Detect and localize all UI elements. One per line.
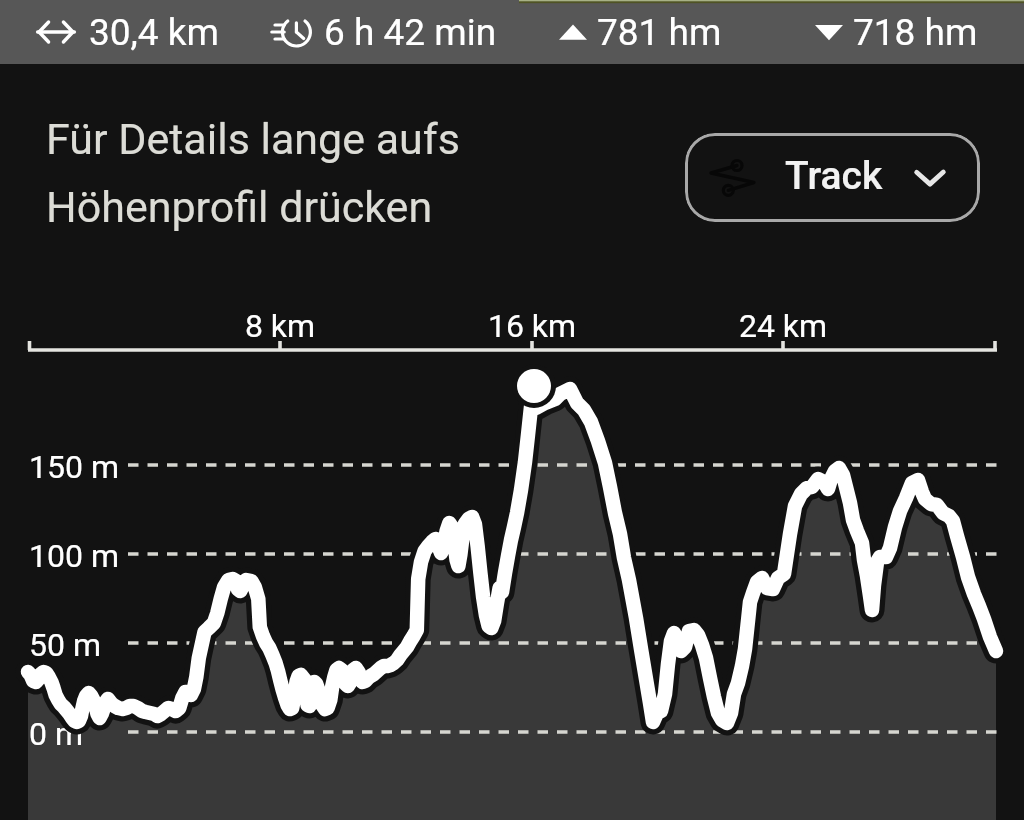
staticText: 8 km [190,307,370,345]
staticText: 100 m [29,537,119,575]
staticText: 0 m [29,715,83,753]
button[interactable]: 30,4 km [0,0,256,64]
staticText: 50 m [29,626,101,664]
staticText: 150 m [29,448,119,486]
staticText: 24 km [693,307,873,345]
staticText: 16 km [442,307,622,345]
button[interactable]: 718 hm [768,0,1024,64]
staticText: 30,4 km [89,11,220,54]
staticText: Track [785,153,883,199]
staticText: 718 hm [853,11,978,54]
button[interactable]: Track [685,133,980,222]
button[interactable]: 6 h 42 min [256,0,512,64]
staticText: 781 hm [597,11,722,54]
staticText: Für Details lange aufs Höhenprofil drück… [46,114,460,232]
staticText: 6 h 42 min [324,11,497,54]
button[interactable]: 781 hm [512,0,768,64]
